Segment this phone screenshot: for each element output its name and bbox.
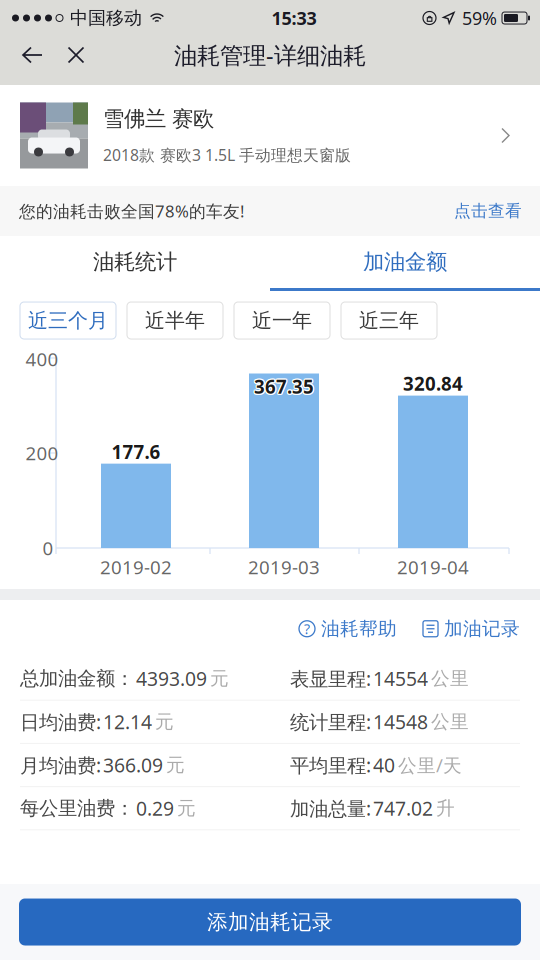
button[interactable]: 关闭	[54, 36, 98, 74]
staticText: 每公里油费：	[20, 796, 134, 820]
staticText: 元	[210, 667, 229, 690]
staticText: 367.35	[255, 374, 315, 399]
staticText: 367.35	[253, 374, 313, 399]
staticText: 油耗统计	[93, 249, 177, 275]
staticText: 元	[155, 710, 174, 734]
staticText: 加油总量:	[290, 795, 371, 821]
staticText: 2018款 赛欧3 1.5L 手动理想天窗版	[103, 144, 351, 166]
staticText: 升	[436, 796, 455, 820]
button[interactable]: 近三个月	[20, 302, 116, 339]
staticText: ?	[304, 619, 310, 638]
staticText: 367.35	[253, 373, 313, 398]
staticText: 元	[177, 796, 196, 820]
staticText: 0	[42, 535, 53, 561]
staticText: 点击查看	[454, 200, 522, 221]
staticText: 表显里程:	[290, 665, 371, 692]
button[interactable]: 近三年	[341, 302, 437, 339]
staticText: 近半年	[145, 308, 205, 333]
staticText: 14554	[373, 665, 428, 692]
staticText: 366.09	[103, 752, 163, 778]
staticText: 200	[25, 440, 58, 466]
staticText: 近一年	[252, 308, 312, 333]
staticText: 367.35	[254, 375, 314, 400]
staticText: 367.35	[255, 375, 315, 400]
staticText: 加油金额	[363, 249, 447, 275]
staticText: 400	[25, 346, 58, 372]
button[interactable]: 加油金额	[270, 236, 540, 288]
staticText: 元	[166, 753, 185, 777]
button[interactable]: ?	[299, 617, 397, 640]
staticText: 平均里程:	[290, 752, 371, 778]
staticText: 公里	[431, 710, 469, 734]
staticText: 近三年	[359, 308, 419, 333]
staticText: 雪佛兰 赛欧	[103, 105, 214, 132]
staticText: 中国移动	[70, 7, 142, 29]
staticText: 177.6	[111, 439, 160, 464]
staticText: 14548	[373, 709, 428, 735]
staticText: 油耗管理-详细油耗	[174, 39, 366, 71]
staticText: 15:33	[271, 6, 316, 30]
staticText: 2019-04	[397, 554, 469, 580]
button[interactable]: 加油记录	[423, 617, 520, 640]
button[interactable]: 雪佛兰 赛欧	[0, 85, 540, 186]
staticText: 油耗帮助	[321, 617, 397, 640]
staticText: 总加油金额：	[20, 666, 134, 691]
staticText: 添加油耗记录	[207, 909, 333, 935]
button[interactable]: 近一年	[234, 302, 330, 339]
staticText: 统计里程:	[290, 709, 371, 735]
button[interactable]: 返回	[10, 36, 54, 74]
staticText: 367.35	[254, 372, 314, 398]
staticText: 367.35	[254, 374, 314, 399]
staticText: 367.35	[255, 373, 315, 398]
button[interactable]: 添加油耗记录	[19, 898, 521, 945]
staticText: 367.35	[253, 375, 313, 400]
button[interactable]: 油耗统计	[0, 236, 270, 288]
staticText: 日均油费:	[20, 709, 101, 735]
staticText: 近三个月	[28, 308, 108, 333]
button[interactable]: 点击查看	[454, 200, 522, 221]
staticText: 747.02	[373, 795, 433, 821]
staticText: 加油记录	[444, 617, 520, 640]
staticText: 2019-03	[248, 554, 320, 580]
staticText: 40	[373, 752, 395, 778]
staticText: 4393.09	[136, 665, 207, 692]
staticText: 59%	[462, 6, 497, 30]
staticText: 320.84	[403, 371, 463, 396]
staticText: 公里/天	[398, 752, 462, 778]
staticText: 0.29	[136, 795, 174, 821]
staticText: 月均油费:	[20, 752, 101, 778]
staticText: 2019-02	[100, 554, 172, 580]
button[interactable]: 近半年	[127, 302, 223, 339]
staticText: 公里	[431, 667, 469, 690]
staticText: 您的油耗击败全国78%的车友!	[19, 200, 244, 222]
staticText: 12.14	[103, 709, 152, 735]
